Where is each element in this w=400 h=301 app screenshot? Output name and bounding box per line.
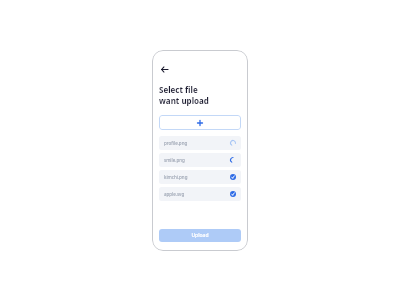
button[interactable]: Add file xyxy=(159,115,241,130)
staticText: apple.svg xyxy=(164,191,185,197)
button[interactable]: profile.png xyxy=(159,136,241,150)
button[interactable]: apple.svg xyxy=(159,187,241,201)
staticText: Upload xyxy=(191,232,209,239)
staticText: want upload xyxy=(159,95,209,106)
button[interactable]: Back xyxy=(159,64,169,74)
staticText: Select file xyxy=(159,84,198,95)
staticText: profile.png xyxy=(164,140,188,146)
button[interactable]: Upload xyxy=(159,229,241,242)
button[interactable]: smile.png xyxy=(159,153,241,167)
button[interactable]: kimchi.png xyxy=(159,170,241,184)
staticText: smile.png xyxy=(164,157,185,163)
staticText: kimchi.png xyxy=(164,174,188,180)
